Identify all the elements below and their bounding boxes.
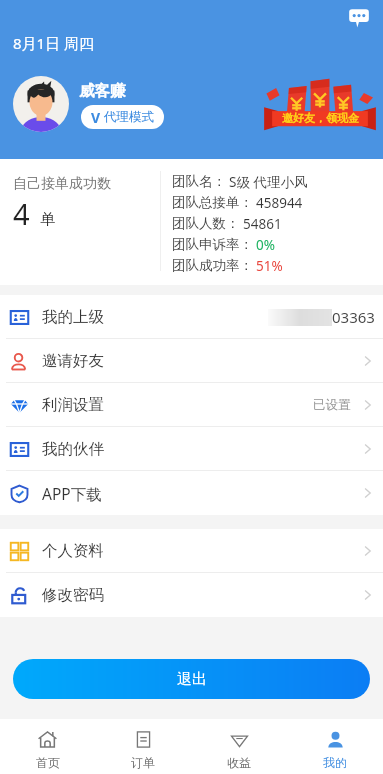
button[interactable]: APP下载 — [0, 471, 383, 515]
staticText: 邀请好友 — [42, 351, 104, 371]
button[interactable]: 利润设置 — [0, 383, 383, 427]
button[interactable]: 退出 — [13, 659, 370, 699]
staticText: V — [91, 108, 101, 127]
button[interactable]: 我的上级 — [0, 295, 383, 339]
button[interactable]: 首页 — [0, 719, 95, 774]
staticText: APP下载 — [42, 483, 102, 504]
staticText: 首页 — [36, 755, 60, 770]
staticText: 团队人数： — [172, 215, 240, 232]
staticText: 自己接单成功数 — [13, 175, 111, 193]
button[interactable]: 邀请好友 — [0, 339, 383, 383]
staticText: 我的 — [323, 755, 347, 770]
staticText: 邀好友，领现金 — [282, 111, 359, 125]
staticText: 8月1日 周四 — [13, 33, 95, 53]
staticText: 利润设置 — [42, 395, 104, 415]
staticText: 我的伙伴 — [42, 439, 104, 459]
staticText: 团队总接单： — [172, 194, 253, 211]
staticText: 退出 — [177, 670, 207, 689]
button[interactable]: 我的伙伴 — [0, 427, 383, 471]
staticText: 团队申诉率： — [172, 236, 253, 253]
button[interactable]: 我的 — [287, 719, 383, 774]
staticText: 修改密码 — [42, 585, 104, 605]
staticText: 代理模式 — [104, 109, 154, 125]
staticText: 订单 — [131, 755, 155, 770]
staticText: 03363 — [332, 307, 375, 327]
staticText: S级 代理小风 — [229, 173, 308, 191]
staticText: 单 — [40, 210, 55, 229]
button[interactable]: V — [81, 105, 164, 129]
staticText: 54861 — [243, 215, 282, 233]
button[interactable]: 订单 — [95, 719, 191, 774]
button[interactable]: 个人资料 — [0, 529, 383, 573]
staticText: 个人资料 — [42, 541, 104, 561]
button[interactable]: Messages — [347, 7, 371, 29]
button[interactable]: 修改密码 — [0, 573, 383, 617]
staticText: 51% — [256, 257, 283, 275]
staticText: 4 — [13, 194, 30, 233]
button[interactable]: Invite friends get cash — [263, 75, 377, 131]
button[interactable]: 收益 — [191, 719, 287, 774]
staticText: 我的上级 — [42, 307, 104, 327]
staticText: 团队成功率： — [172, 257, 253, 274]
staticText: 458944 — [256, 194, 303, 212]
staticText: 团队名： — [172, 173, 226, 190]
staticText: 收益 — [227, 755, 251, 770]
staticText: 威客赚 — [79, 81, 126, 101]
staticText: 0% — [256, 236, 275, 254]
staticText: 已设置 — [313, 397, 351, 413]
